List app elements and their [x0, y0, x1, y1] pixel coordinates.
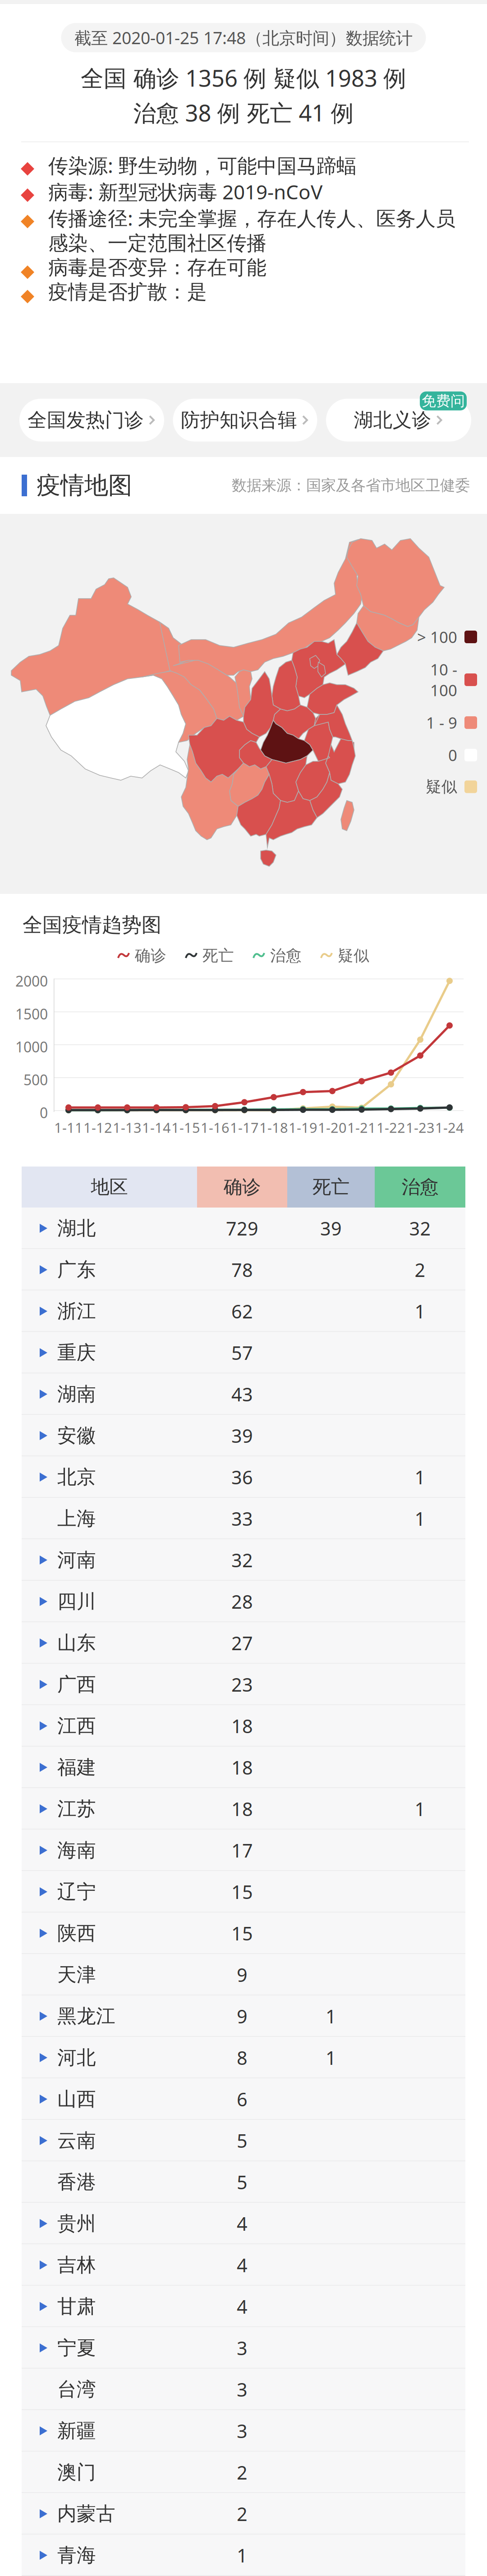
button[interactable]: 海南 — [22, 1830, 465, 1871]
button[interactable]: 贵州 — [22, 2203, 465, 2244]
button[interactable]: 北京 — [22, 1456, 465, 1498]
staticText: 18 — [231, 1714, 253, 1738]
staticText: 澳门 — [57, 2461, 96, 2484]
staticText: 1-15 — [171, 1118, 200, 1137]
button[interactable]: 浙江 — [22, 1290, 465, 1332]
staticText: 1-23 — [406, 1118, 435, 1137]
staticText: 2000 — [15, 971, 48, 991]
button[interactable]: 福建 — [22, 1747, 465, 1788]
staticText: 9 — [237, 2004, 248, 2029]
staticText: 1 - 9 — [426, 712, 457, 733]
staticText: 5 — [237, 2128, 248, 2153]
staticText: 全国疫情趋势图 — [23, 913, 161, 937]
staticText: 疑似 — [426, 777, 457, 796]
staticText: 宁夏 — [57, 2336, 96, 2360]
button[interactable]: 江西 — [22, 1705, 465, 1747]
button[interactable]: 防护知识合辑 — [173, 399, 317, 442]
staticText: 1 — [415, 1796, 425, 1821]
button[interactable]: 吉林 — [22, 2244, 465, 2286]
button[interactable]: 陕西 — [22, 1913, 465, 1954]
staticText: 28 — [231, 1589, 253, 1614]
staticText: 0 — [40, 1103, 48, 1122]
staticText: 15 — [231, 1879, 253, 1904]
staticText: 1-17 — [230, 1118, 259, 1137]
staticText: 1 — [237, 2543, 248, 2568]
button[interactable]: 安徽 — [22, 1415, 465, 1456]
staticText: 1 — [326, 2004, 336, 2029]
staticText: 32 — [231, 1548, 253, 1572]
staticText: 1-20 — [318, 1118, 347, 1137]
staticText: 57 — [231, 1340, 253, 1365]
staticText: 四川 — [57, 1590, 96, 1613]
button[interactable]: 台湾 — [22, 2369, 465, 2410]
button[interactable]: 重庆 — [22, 1332, 465, 1373]
staticText: 10 - 100 — [430, 659, 457, 701]
staticText: 上海 — [57, 1507, 96, 1530]
button[interactable]: 黑龙江 — [22, 1995, 465, 2037]
button[interactable]: 宁夏 — [22, 2327, 465, 2369]
staticText: 浙江 — [57, 1299, 96, 1323]
staticText: 全国 确诊 1356 例 疑似 1983 例 — [81, 63, 406, 93]
staticText: 1 — [415, 1465, 425, 1489]
button[interactable]: 四川 — [22, 1581, 465, 1622]
button[interactable]: 甘肃 — [22, 2286, 465, 2327]
staticText: 1-21 — [347, 1118, 376, 1137]
staticText: 湖北义诊 — [354, 408, 431, 432]
button[interactable]: 内蒙古 — [22, 2493, 465, 2535]
staticText: 内蒙古 — [57, 2502, 115, 2526]
button[interactable]: 河南 — [22, 1539, 465, 1581]
staticText: 8 — [237, 2045, 248, 2070]
staticText: 1-13 — [113, 1118, 142, 1137]
staticText: 病毒是否变异：存在可能 — [48, 256, 266, 280]
button[interactable]: 河北 — [22, 2037, 465, 2078]
staticText: 广东 — [57, 1258, 96, 1282]
staticText: 23 — [231, 1672, 253, 1697]
button[interactable]: 山东 — [22, 1622, 465, 1664]
button[interactable]: 湖南 — [22, 1373, 465, 1415]
button[interactable]: 湖北义诊 — [326, 399, 471, 442]
button[interactable]: 青海 — [22, 2535, 465, 2576]
button[interactable]: 湖北 — [22, 1208, 465, 1249]
staticText: 海南 — [57, 1838, 96, 1862]
staticText: 确诊 — [135, 946, 166, 965]
staticText: 1 — [326, 2045, 336, 2070]
button[interactable]: 澳门 — [22, 2452, 465, 2493]
staticText: 河南 — [57, 1548, 96, 1572]
staticText: 贵州 — [57, 2212, 96, 2235]
staticText: 1 — [415, 1299, 425, 1324]
staticText: 治愈 38 例 死亡 41 例 — [133, 97, 354, 128]
button[interactable]: 香港 — [22, 2161, 465, 2203]
staticText: 数据来源：国家及各省市地区卫健委 — [232, 476, 470, 495]
button[interactable]: 江苏 — [22, 1788, 465, 1830]
staticText: 防护知识合辑 — [181, 408, 297, 432]
staticText: 1-14 — [142, 1118, 171, 1137]
staticText: 河北 — [57, 2046, 96, 2069]
button[interactable]: 新疆 — [22, 2410, 465, 2452]
staticText: 传染源: 野生动物，可能中国马蹄蝠 — [48, 152, 356, 178]
staticText: 湖南 — [57, 1382, 96, 1406]
staticText: 北京 — [57, 1465, 96, 1489]
staticText: 18 — [231, 1755, 253, 1780]
button[interactable]: 全国发热门诊 — [19, 399, 164, 442]
button[interactable]: 云南 — [22, 2120, 465, 2161]
staticText: 1-16 — [201, 1118, 230, 1137]
button[interactable]: 上海 — [22, 1498, 465, 1539]
button[interactable]: 广东 — [22, 1249, 465, 1290]
staticText: 36 — [231, 1465, 253, 1489]
staticText: 6 — [237, 2087, 248, 2112]
button[interactable]: 辽宁 — [22, 1871, 465, 1913]
staticText: 2 — [237, 2460, 248, 2485]
staticText: 32 — [409, 1216, 431, 1241]
staticText: 病毒: 新型冠状病毒 2019-nCoV — [48, 178, 322, 205]
staticText: 1-24 — [435, 1118, 464, 1137]
button[interactable]: 天津 — [22, 1954, 465, 1995]
staticText: 4 — [237, 2253, 248, 2277]
staticText: 62 — [231, 1299, 253, 1324]
staticText: 吉林 — [57, 2253, 96, 2277]
button[interactable]: 广西 — [22, 1664, 465, 1705]
staticText: 治愈 — [402, 1176, 439, 1198]
staticText: 天津 — [57, 1963, 96, 1987]
button[interactable]: 山西 — [22, 2078, 465, 2120]
staticText: 安徽 — [57, 1424, 96, 1447]
staticText: 3 — [237, 2336, 248, 2360]
